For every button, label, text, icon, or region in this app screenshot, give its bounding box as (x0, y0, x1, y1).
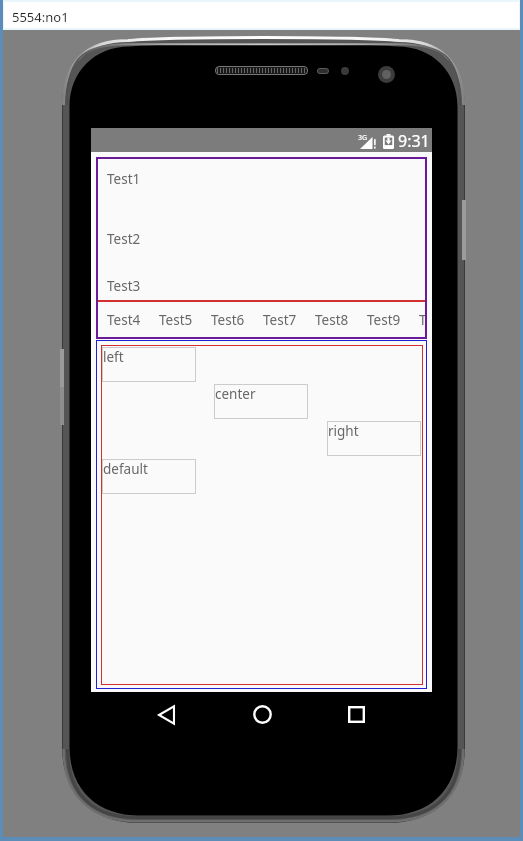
staticText: Test10 (419, 311, 427, 329)
staticText: Test8 (315, 311, 349, 329)
button[interactable]: left (102, 347, 196, 382)
staticText: right (328, 422, 359, 440)
staticText: Test5 (159, 311, 193, 329)
staticText: 9:31 (398, 130, 430, 152)
staticText: Test7 (263, 311, 297, 329)
staticText: left (103, 348, 124, 366)
staticText: center (215, 385, 256, 403)
button[interactable]: center (214, 384, 308, 419)
staticText: 3G (358, 133, 368, 143)
button[interactable]: Recent apps (327, 692, 385, 737)
button[interactable]: Home (233, 692, 291, 737)
button[interactable]: default (102, 459, 196, 494)
button[interactable]: right (327, 421, 421, 456)
staticText: Test1 (107, 170, 141, 188)
staticText: Test3 (107, 277, 141, 295)
staticText: default (103, 460, 148, 478)
button[interactable]: Back (137, 692, 195, 737)
staticText: Test4 (107, 311, 141, 329)
staticText: Test6 (211, 311, 245, 329)
staticText: Test9 (367, 311, 401, 329)
staticText: Test2 (107, 230, 141, 248)
staticText: 5554:no1 (12, 8, 69, 26)
